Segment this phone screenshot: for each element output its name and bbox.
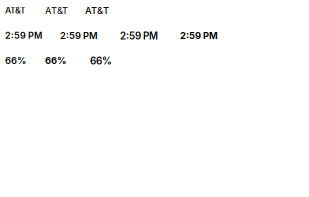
staticText: AT&T: [45, 5, 68, 16]
staticText: 66%: [45, 55, 66, 66]
staticText: 2:59 PM: [120, 30, 158, 42]
staticText: AT&T: [85, 5, 109, 16]
staticText: 2:59 PM: [180, 30, 218, 41]
staticText: 2:59 PM: [5, 30, 42, 41]
staticText: 2:59 PM: [60, 30, 98, 41]
staticText: 66%: [5, 55, 26, 66]
staticText: AT&T: [5, 5, 26, 16]
staticText: 66%: [90, 55, 112, 67]
